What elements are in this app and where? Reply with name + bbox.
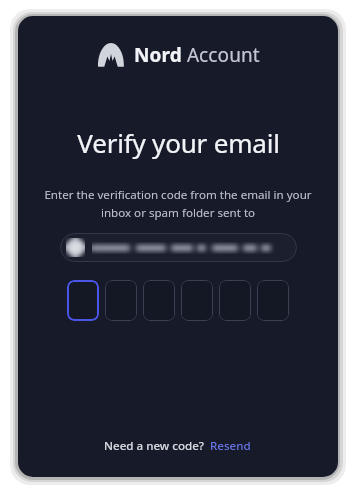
button[interactable]: Resend: [209, 436, 252, 456]
staticText: Need a new code?: [104, 438, 205, 454]
button[interactable]: Verification code digit 3: [143, 280, 175, 321]
button[interactable]: Nord logo: [93, 39, 264, 71]
button[interactable]: Verification code digit 2: [105, 280, 137, 321]
staticText: Resend: [210, 438, 251, 454]
staticText: Enter the verification code from the ema…: [32, 187, 324, 221]
staticText: Verify your email: [77, 125, 280, 160]
button[interactable]: Verification code digit 4: [181, 280, 213, 321]
button[interactable]: [60, 233, 297, 262]
button[interactable]: Verification code digit 1: [67, 280, 99, 321]
staticText: Nord Account: [134, 42, 260, 68]
button[interactable]: Verification code digit 6: [257, 280, 289, 321]
other: Nord logo: [97, 41, 125, 69]
button[interactable]: Verification code digit 5: [219, 280, 251, 321]
